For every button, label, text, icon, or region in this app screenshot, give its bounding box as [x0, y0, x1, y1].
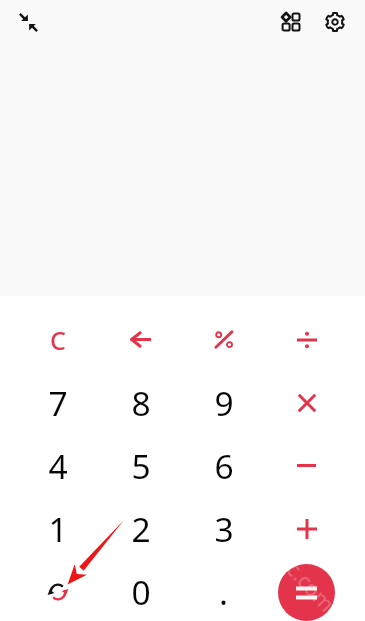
button[interactable]: Divide	[265, 308, 348, 371]
button[interactable]: Minus	[265, 434, 348, 497]
staticText: 1	[48, 506, 68, 552]
button[interactable]: C	[16, 308, 99, 371]
button[interactable]: 2	[99, 497, 182, 560]
button[interactable]: Percent	[182, 308, 265, 371]
button[interactable]: 4	[16, 434, 99, 497]
staticText: 9	[214, 380, 234, 426]
button[interactable]: 3	[182, 497, 265, 560]
staticText: 3	[214, 506, 234, 552]
staticText: .	[219, 569, 228, 615]
button[interactable]: 9	[182, 371, 265, 434]
button[interactable]: Convert	[16, 560, 99, 621]
staticText: 7	[48, 380, 68, 426]
button[interactable]: 6	[182, 434, 265, 497]
staticText: 6	[214, 443, 234, 489]
staticText: 4	[48, 443, 68, 489]
button[interactable]: Apps	[276, 7, 305, 36]
staticText: 2	[131, 506, 151, 552]
button[interactable]: .	[182, 560, 265, 621]
button[interactable]: Collapse	[12, 6, 45, 39]
button[interactable]: Settings	[320, 7, 349, 36]
button[interactable]: 5	[99, 434, 182, 497]
button[interactable]: 0	[99, 560, 182, 621]
button[interactable]: 7	[16, 371, 99, 434]
button[interactable]: Plus	[265, 497, 348, 560]
staticText: 0	[131, 569, 151, 615]
button[interactable]: Backspace	[99, 308, 182, 371]
staticText: 8	[131, 380, 151, 426]
button[interactable]: 8	[99, 371, 182, 434]
button[interactable]: Multiply	[265, 371, 348, 434]
button[interactable]: Equals	[278, 564, 335, 621]
staticText: 5	[131, 443, 151, 489]
button[interactable]: 1	[16, 497, 99, 560]
staticText: C	[50, 323, 66, 357]
